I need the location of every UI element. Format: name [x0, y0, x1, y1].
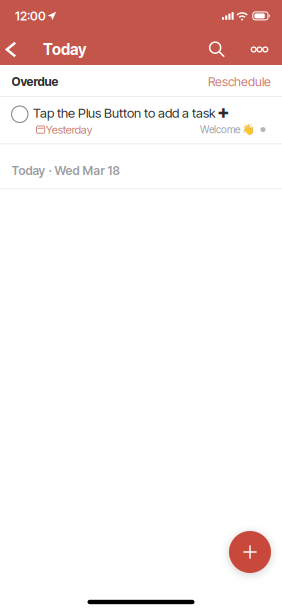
staticText: Welcome 👋 [200, 123, 255, 136]
staticText: Overdue [11, 74, 58, 89]
button[interactable]: Today [43, 34, 86, 65]
staticText: Tap the Plus Button to add a task ✚ [33, 105, 229, 121]
button[interactable]: Search [203, 34, 231, 65]
button[interactable]: More options [246, 34, 273, 65]
staticText: Today [43, 40, 86, 59]
button[interactable]: Back [0, 34, 22, 65]
button[interactable]: Reschedule [208, 74, 271, 89]
staticText: Reschedule [208, 74, 271, 89]
button[interactable]: Tap the Plus Button to add a task ✚ [0, 97, 282, 143]
staticText: 12:00 [15, 8, 46, 23]
staticText: Today · Wed Mar 18 [11, 163, 119, 178]
button[interactable]: Add task [229, 531, 271, 573]
staticText: Yesterday [46, 123, 93, 136]
